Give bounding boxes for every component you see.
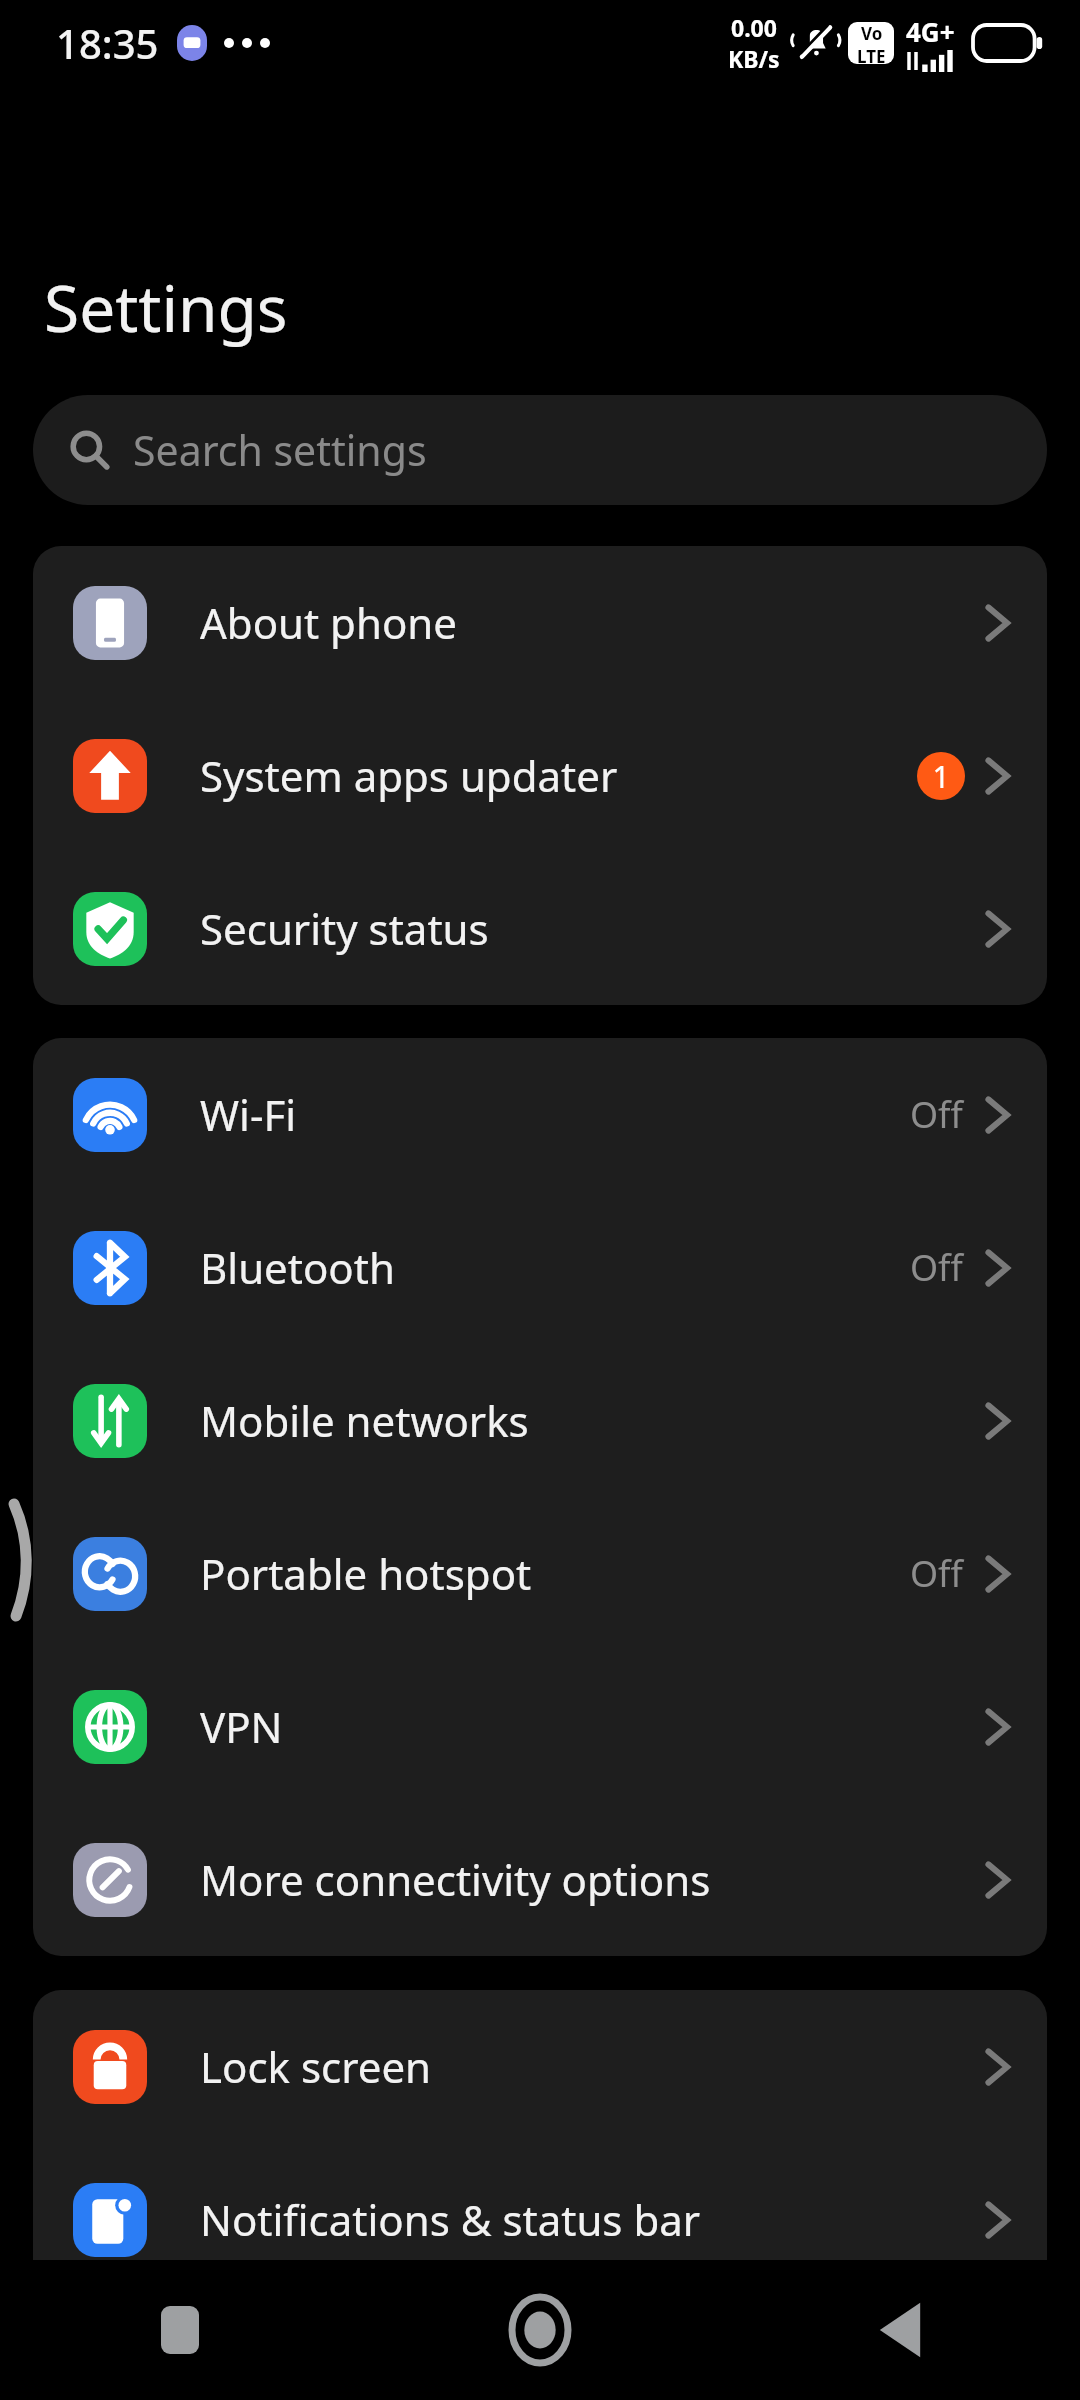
staticText: 0.00 bbox=[731, 12, 777, 43]
staticText: Lock screen bbox=[200, 2038, 983, 2095]
staticText: Off bbox=[910, 1243, 963, 1292]
button[interactable]: Bluetooth bbox=[33, 1191, 1047, 1344]
staticText: Bluetooth bbox=[200, 1239, 910, 1296]
staticText: Notifications & status bar bbox=[200, 2191, 983, 2248]
button[interactable]: VPN bbox=[33, 1650, 1047, 1803]
staticText: Security status bbox=[200, 900, 983, 957]
staticText: More connectivity options bbox=[200, 1851, 983, 1908]
staticText: Mobile networks bbox=[200, 1392, 983, 1449]
button[interactable]: Back bbox=[720, 2260, 1080, 2400]
staticText: 1 bbox=[932, 756, 950, 797]
staticText: Search settings bbox=[133, 422, 427, 478]
staticText: Vo bbox=[861, 22, 883, 45]
button[interactable]: Recents bbox=[0, 2260, 360, 2400]
staticText: Off bbox=[910, 1549, 963, 1598]
button[interactable]: Home bbox=[360, 2260, 720, 2400]
staticText: LTE bbox=[857, 45, 886, 64]
staticText: About phone bbox=[200, 594, 983, 651]
staticText: 4G+ bbox=[906, 14, 955, 49]
button[interactable]: Portable hotspot bbox=[33, 1497, 1047, 1650]
button[interactable]: Security status bbox=[33, 852, 1047, 1005]
button[interactable]: Notifications & status bar bbox=[33, 2143, 1047, 2296]
staticText: Portable hotspot bbox=[200, 1545, 910, 1602]
button[interactable]: System apps updater bbox=[33, 699, 1047, 852]
staticText: 18:35 bbox=[56, 16, 159, 70]
staticText: Wi-Fi bbox=[200, 1086, 910, 1143]
button[interactable]: Lock screen bbox=[33, 1990, 1047, 2143]
button[interactable]: Wi-Fi bbox=[33, 1038, 1047, 1191]
button[interactable]: Search settings bbox=[33, 395, 1047, 505]
staticText: KB/s bbox=[728, 43, 780, 74]
staticText: Settings bbox=[44, 264, 288, 351]
button[interactable]: About phone bbox=[33, 546, 1047, 699]
staticText: System apps updater bbox=[200, 747, 917, 804]
button[interactable]: More connectivity options bbox=[33, 1803, 1047, 1956]
staticText: Off bbox=[910, 1090, 963, 1139]
button[interactable]: Mobile networks bbox=[33, 1344, 1047, 1497]
staticText: VPN bbox=[200, 1698, 983, 1755]
